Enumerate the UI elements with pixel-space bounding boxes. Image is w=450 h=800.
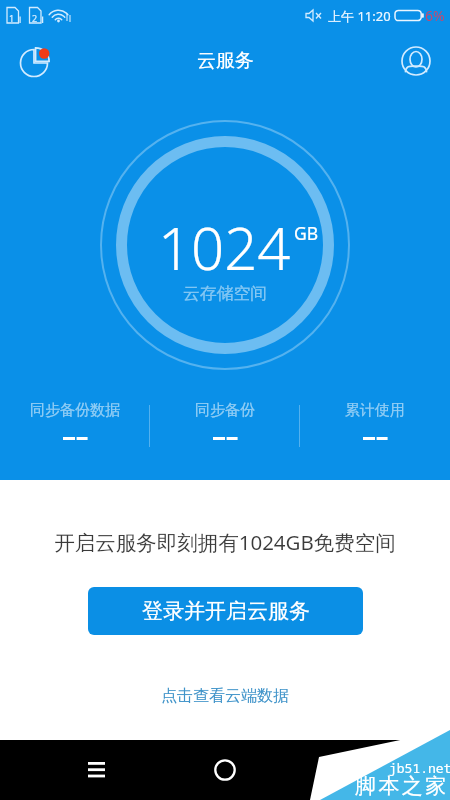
button[interactable]: Storage usage — [12, 41, 56, 85]
staticText: 点击查看云端数据 — [161, 686, 289, 706]
staticText: 云服务 — [197, 49, 254, 73]
button[interactable]: Home — [201, 746, 249, 794]
button[interactable]: 同步备份数据 — [0, 396, 150, 456]
button[interactable]: 登录并开启云服务 — [88, 587, 363, 635]
staticText: 脚本之家 — [355, 773, 449, 799]
staticText: 上午 11:20 — [328, 7, 391, 25]
staticText: 6% — [425, 6, 445, 25]
staticText: 累计使用 — [345, 401, 405, 420]
button[interactable]: 同步备份 — [150, 396, 300, 456]
staticText: 同步备份数据 — [30, 401, 120, 420]
button[interactable]: Menu — [72, 745, 120, 793]
staticText: 1024 — [158, 208, 291, 287]
staticText: 1 — [9, 12, 15, 24]
button[interactable]: 点击查看云端数据 — [155, 682, 295, 710]
staticText: 登录并开启云服务 — [142, 598, 310, 624]
staticText: 开启云服务即刻拥有1024GB免费空间 — [54, 528, 396, 556]
staticText: GB — [294, 221, 319, 245]
staticText: 云存储空间 — [183, 283, 267, 304]
staticText: jb51.net — [389, 759, 450, 777]
button[interactable]: Back — [326, 746, 374, 794]
staticText: 2 — [32, 12, 38, 24]
button[interactable]: Account — [394, 39, 438, 83]
button[interactable]: 累计使用 — [300, 396, 450, 456]
staticText: 同步备份 — [195, 401, 255, 420]
